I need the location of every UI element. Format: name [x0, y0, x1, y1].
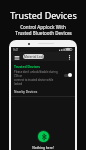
staticText: connect to trusted device while locked — [14, 78, 61, 86]
staticText: 9:41 — [13, 48, 19, 52]
button[interactable]: Trusted Devices — [11, 61, 75, 89]
button[interactable]: Open navigation menu — [14, 54, 20, 60]
staticText: Nothing here! — [32, 146, 54, 150]
staticText: Nearby Devices — [14, 90, 38, 94]
staticText: Trusted Devices — [14, 64, 40, 69]
staticText: Trusted Bluetooth Devices — [15, 30, 72, 36]
button[interactable]: Toggle trusted devices — [63, 72, 72, 78]
staticText: Control Applock With — [20, 24, 66, 30]
staticText: Trusted Devices — [10, 9, 77, 21]
staticText: Material Lock — [24, 55, 44, 59]
staticText: Please don't unlock/disable during 72h o… — [14, 70, 61, 78]
button[interactable]: Material Lock — [23, 54, 44, 59]
button[interactable]: More options — [66, 54, 72, 60]
